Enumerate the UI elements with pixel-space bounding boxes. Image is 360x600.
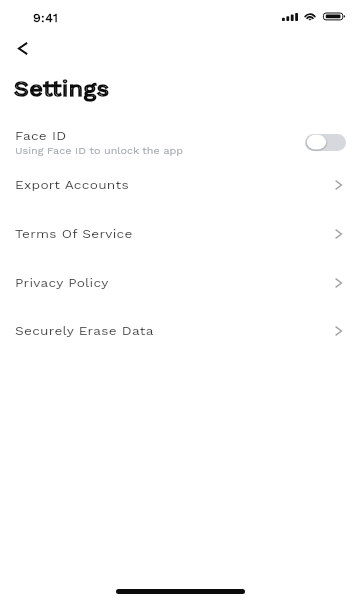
staticText: Terms Of Service [15,227,134,241]
staticText: 9:41 [33,11,59,25]
button[interactable]: Face ID [0,118,360,166]
staticText: Settings [14,77,110,101]
button[interactable]: Back [6,33,39,64]
staticText: Face ID [15,129,66,143]
staticText: Using Face ID to unlock the app [15,145,183,156]
button[interactable]: Export Accounts [0,160,360,209]
button[interactable]: Face ID toggle [305,134,346,151]
button[interactable]: Privacy Policy [0,258,360,307]
button[interactable]: Terms Of Service [0,209,360,258]
staticText: Export Accounts [15,178,129,192]
button[interactable]: Securely Erase Data [0,306,360,355]
staticText: Securely Erase Data [15,324,154,338]
staticText: Privacy Policy [15,276,109,290]
